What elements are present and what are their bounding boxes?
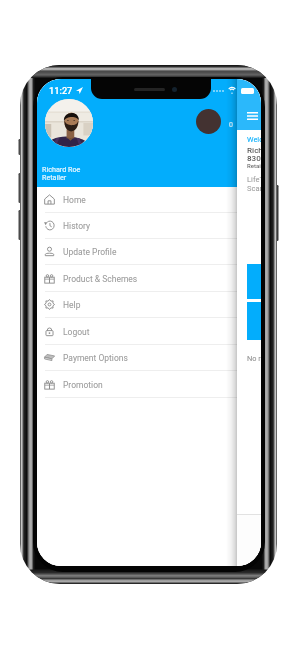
button[interactable]: Update Profile xyxy=(37,239,237,265)
button[interactable]: Promotion xyxy=(37,372,237,398)
staticText: Retailer xyxy=(42,173,67,181)
button[interactable]: Payment Options xyxy=(37,345,237,371)
staticText: Welcome xyxy=(247,135,261,144)
staticText: 0 xyxy=(229,121,233,129)
button[interactable]: Home xyxy=(37,187,237,213)
button[interactable]: History xyxy=(37,213,237,239)
staticText: Promotion xyxy=(63,380,103,390)
staticText: Retailer xyxy=(247,162,261,169)
staticText: Richard Roe xyxy=(247,145,261,154)
staticText: Update Profile xyxy=(63,247,117,257)
staticText: Payment Options xyxy=(63,353,128,363)
staticText: History xyxy=(63,221,91,231)
staticText: 8302XXXXXX xyxy=(247,153,261,162)
staticText: Scan Points xyxy=(247,184,261,193)
staticText: Product & Schemes xyxy=(63,274,138,284)
staticText: No recent transaction xyxy=(247,354,261,363)
button[interactable]: Product & Schemes xyxy=(37,266,237,292)
staticText: 11:27 xyxy=(49,85,73,96)
staticText: Richard Roe xyxy=(42,165,81,173)
button[interactable]: Logout xyxy=(37,319,237,345)
staticText: Help xyxy=(63,300,81,310)
button[interactable]: Open navigation menu xyxy=(242,106,261,126)
button[interactable]: Help xyxy=(37,292,237,318)
staticText: LifeTime Points xyxy=(247,175,261,184)
staticText: Logout xyxy=(63,327,90,337)
staticText: Home xyxy=(63,195,86,205)
